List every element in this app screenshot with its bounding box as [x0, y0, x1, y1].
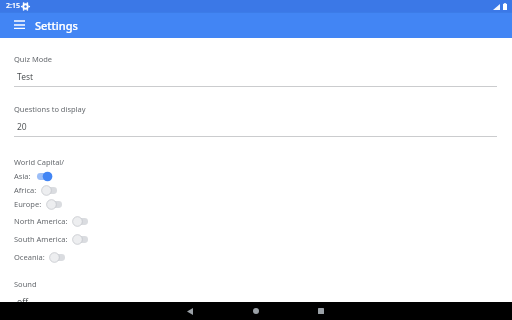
- button[interactable]: Recent apps: [311, 302, 331, 320]
- button[interactable]: Asia:: [0, 170, 512, 182]
- button[interactable]: Open navigation menu: [8, 14, 30, 36]
- staticText: Europe:: [14, 199, 42, 209]
- staticText: Quiz Mode: [14, 54, 53, 64]
- staticText: 2:15: [6, 1, 20, 11]
- button[interactable]: [45, 198, 65, 210]
- staticText: Oceania:: [14, 252, 45, 262]
- button[interactable]: Home: [246, 302, 266, 320]
- button[interactable]: Europe:: [0, 198, 512, 210]
- button[interactable]: [40, 184, 60, 196]
- button[interactable]: [71, 215, 91, 227]
- staticText: North America:: [14, 216, 68, 226]
- staticText: Settings: [35, 18, 78, 33]
- button[interactable]: Africa:: [0, 184, 512, 196]
- staticText: Sound: [14, 279, 37, 289]
- button[interactable]: Back: [180, 302, 200, 320]
- staticText: 20: [17, 121, 27, 133]
- button[interactable]: South America:: [0, 233, 512, 245]
- staticText: South America:: [14, 234, 68, 244]
- staticText: off: [17, 296, 28, 308]
- staticText: Asia:: [14, 171, 31, 181]
- staticText: World Capital/: [14, 157, 65, 167]
- button[interactable]: Test: [0, 71, 512, 87]
- button[interactable]: North America:: [0, 215, 512, 227]
- staticText: Africa:: [14, 185, 37, 195]
- staticText: Questions to display: [14, 104, 86, 114]
- button[interactable]: Oceania:: [0, 251, 512, 263]
- button[interactable]: off: [0, 296, 512, 308]
- button[interactable]: 20: [0, 121, 512, 137]
- button[interactable]: [71, 233, 91, 245]
- button[interactable]: [34, 170, 54, 182]
- staticText: Test: [17, 71, 34, 83]
- button[interactable]: [48, 251, 68, 263]
